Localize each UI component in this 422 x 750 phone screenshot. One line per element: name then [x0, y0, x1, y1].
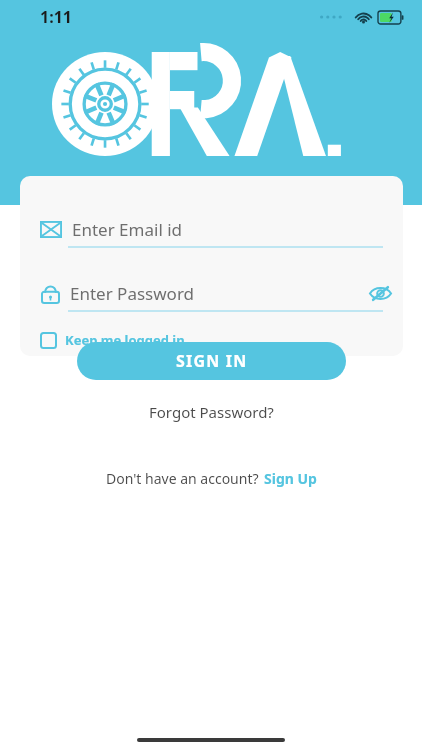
staticText: Forgot Password?	[149, 402, 274, 422]
button[interactable]: Enter Email id	[20, 212, 403, 246]
staticText: Don't have an account?	[106, 469, 259, 488]
button[interactable]: Show password	[363, 276, 397, 310]
staticText: Enter Email id	[72, 218, 183, 241]
staticText: Enter Password	[70, 282, 195, 305]
button[interactable]: Enter Password	[20, 276, 403, 310]
button[interactable]: Sign Up	[264, 469, 317, 488]
staticText: 1:11	[40, 6, 72, 28]
button[interactable]: Forgot Password?	[143, 396, 280, 428]
staticText: Keep me logged in	[65, 331, 185, 349]
staticText: Sign Up	[264, 469, 317, 488]
button[interactable]: Keep me logged in	[40, 326, 185, 354]
staticText: SIGN IN	[176, 350, 248, 372]
button[interactable]: SIGN IN	[77, 342, 346, 380]
